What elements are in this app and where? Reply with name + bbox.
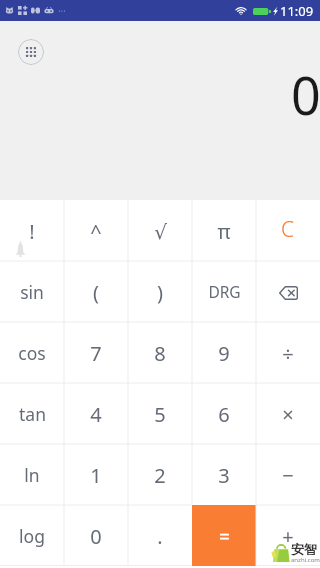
button[interactable]: cos xyxy=(0,322,64,383)
other: Backspace xyxy=(279,286,298,300)
button[interactable]: 9 xyxy=(192,322,256,383)
button[interactable]: − xyxy=(256,444,320,505)
staticText: 0 xyxy=(90,523,102,550)
button[interactable]: ln xyxy=(0,444,64,505)
button[interactable]: C xyxy=(256,200,320,261)
button[interactable]: × xyxy=(256,383,320,444)
staticText: tan xyxy=(19,402,46,426)
staticText: sin xyxy=(20,280,44,304)
staticText: DRG xyxy=(208,281,241,302)
button[interactable]: 7 xyxy=(64,322,128,383)
staticText: ! xyxy=(29,218,35,245)
button[interactable]: 8 xyxy=(128,322,192,383)
staticText: 8 xyxy=(154,340,166,367)
staticText: ( xyxy=(93,279,99,306)
staticText: 9 xyxy=(218,340,230,367)
staticText: log xyxy=(19,524,45,548)
button[interactable]: ÷ xyxy=(256,322,320,383)
staticText: × xyxy=(282,401,294,428)
button[interactable]: = xyxy=(192,505,256,566)
button[interactable]: 2 xyxy=(128,444,192,505)
staticText: 6 xyxy=(218,401,230,428)
staticText: √ xyxy=(154,220,167,243)
button[interactable]: √ xyxy=(128,200,192,261)
staticText: . xyxy=(157,523,163,550)
button[interactable]: sin xyxy=(0,261,64,322)
button[interactable]: tan xyxy=(0,383,64,444)
staticText: 2 xyxy=(154,462,166,489)
button[interactable]: ) xyxy=(128,261,192,322)
staticText: + xyxy=(282,523,294,550)
staticText: C xyxy=(281,215,295,244)
staticText: 3 xyxy=(218,462,230,489)
button[interactable]: 0 xyxy=(64,505,128,566)
button[interactable]: Backspace xyxy=(256,261,320,322)
button[interactable]: log xyxy=(0,505,64,566)
staticText: 11:09 xyxy=(280,2,314,20)
staticText: ÷ xyxy=(282,340,294,367)
staticText: − xyxy=(282,462,294,489)
staticText: 4 xyxy=(90,401,102,428)
staticText: 0 xyxy=(291,59,320,130)
button[interactable]: ! xyxy=(0,200,64,261)
button[interactable]: 1 xyxy=(64,444,128,505)
staticText: ) xyxy=(157,279,163,306)
button[interactable]: 3 xyxy=(192,444,256,505)
staticText: anzhi.com xyxy=(291,556,320,564)
button[interactable]: 4 xyxy=(64,383,128,444)
button[interactable]: . xyxy=(128,505,192,566)
staticText: 安智 xyxy=(291,541,317,557)
staticText: ln xyxy=(24,463,40,487)
button[interactable]: Apps xyxy=(18,39,44,65)
button[interactable]: DRG xyxy=(192,261,256,322)
staticText: 5 xyxy=(154,401,166,428)
staticText: = xyxy=(219,524,230,550)
button[interactable]: π xyxy=(192,200,256,261)
staticText: cos xyxy=(18,341,46,365)
button[interactable]: 6 xyxy=(192,383,256,444)
button[interactable]: + xyxy=(256,505,320,566)
button[interactable]: 5 xyxy=(128,383,192,444)
staticText: π xyxy=(217,218,231,245)
button[interactable]: ( xyxy=(64,261,128,322)
staticText: 7 xyxy=(90,340,102,367)
staticText: 1 xyxy=(90,462,102,489)
staticText: ^ xyxy=(90,218,102,245)
button[interactable]: ^ xyxy=(64,200,128,261)
